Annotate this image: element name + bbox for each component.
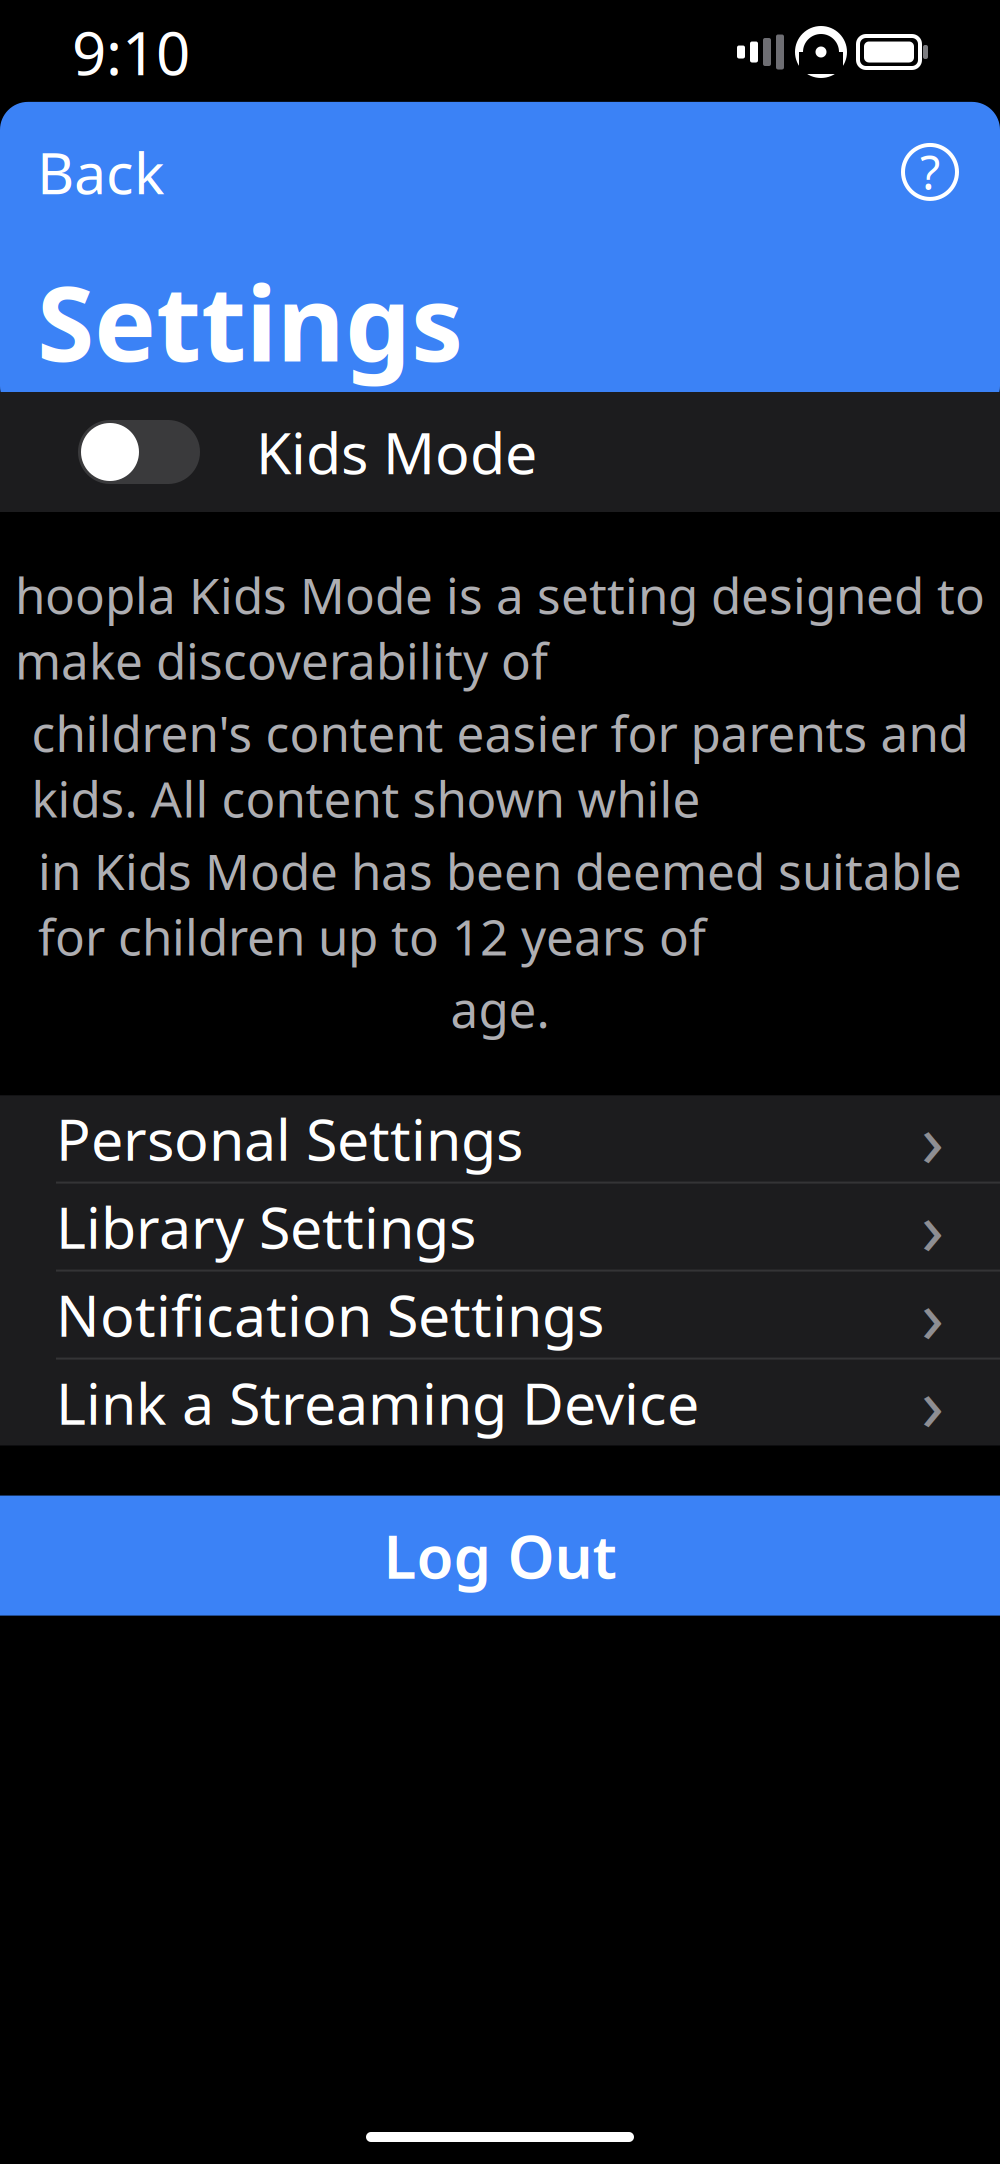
staticText: Notification Settings — [56, 1276, 604, 1353]
staticText: › — [921, 1177, 944, 1276]
staticText: Back — [37, 134, 165, 210]
staticText: age. — [450, 976, 549, 1042]
staticText: › — [921, 1265, 944, 1364]
staticText: 9:10 — [72, 12, 190, 92]
staticText: Kids Mode — [256, 414, 537, 490]
staticText: ? — [920, 141, 940, 203]
button[interactable]: Personal Settings — [0, 1096, 1000, 1182]
button[interactable]: Link a Streaming Device — [0, 1358, 1000, 1446]
button[interactable]: Library Settings — [0, 1182, 1000, 1270]
staticText: in Kids Mode has been deemed suitable fo… — [38, 838, 962, 969]
staticText: Settings — [37, 252, 463, 390]
button[interactable]: Help — [897, 139, 963, 205]
button[interactable]: Log Out — [0, 1496, 1000, 1616]
staticText: Log Out — [383, 1516, 616, 1595]
button[interactable]: Back — [37, 118, 185, 226]
button[interactable]: Notification Settings — [0, 1270, 1000, 1358]
staticText: Link a Streaming Device — [56, 1364, 699, 1441]
button[interactable]: Kids Mode — [0, 392, 1000, 512]
staticText: › — [921, 1089, 944, 1188]
staticText: Personal Settings — [56, 1100, 523, 1177]
staticText: hoopla Kids Mode is a setting designed t… — [15, 562, 985, 693]
staticText: Library Settings — [56, 1188, 476, 1265]
staticText: › — [921, 1353, 944, 1452]
staticText: children's content easier for parents an… — [31, 700, 968, 831]
